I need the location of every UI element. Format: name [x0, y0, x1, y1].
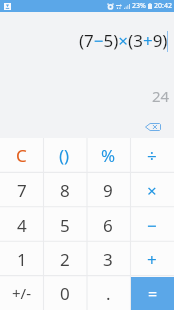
button[interactable]: − [130, 208, 174, 242]
staticText: 2 [60, 248, 70, 271]
staticText: ÷ [147, 144, 157, 167]
button[interactable]: % [86, 138, 130, 173]
button[interactable]: Backspace [140, 117, 166, 137]
button[interactable]: 5 [43, 208, 86, 242]
button[interactable]: 8 [43, 173, 86, 208]
staticText: 3 [103, 248, 113, 271]
staticText: 8 [60, 179, 70, 202]
button[interactable]: ÷ [130, 138, 174, 173]
button[interactable]: 7 [0, 173, 43, 208]
staticText: = [148, 283, 158, 305]
button[interactable]: 1 [0, 242, 43, 276]
staticText: 6 [103, 214, 113, 237]
button[interactable]: 2 [43, 242, 86, 276]
staticText: . [106, 282, 111, 305]
staticText: +/- [12, 283, 31, 303]
staticText: % [101, 144, 116, 167]
button[interactable]: 4 [0, 208, 43, 242]
button[interactable]: 9 [86, 173, 130, 208]
staticText: 5 [60, 214, 70, 237]
staticText: − [147, 214, 157, 237]
button[interactable]: C [0, 138, 43, 173]
staticText: () [59, 144, 70, 167]
staticText: 20:42 [154, 1, 172, 11]
button[interactable]: 6 [86, 208, 130, 242]
button[interactable]: +/- [0, 276, 43, 310]
staticText: 7 [17, 179, 27, 202]
button[interactable]: + [130, 242, 174, 276]
staticText: (7−5)×(3+9) [79, 29, 168, 52]
button[interactable]: = [130, 276, 174, 310]
staticText: 24 [152, 86, 170, 106]
button[interactable]: 0 [43, 276, 86, 310]
button[interactable]: () [43, 138, 86, 173]
staticText: 1 [17, 248, 27, 271]
button[interactable]: . [86, 276, 130, 310]
staticText: 9 [103, 179, 113, 202]
staticText: + [147, 248, 157, 271]
button[interactable]: × [130, 173, 174, 208]
staticText: 23% [132, 1, 146, 11]
staticText: C [16, 144, 27, 167]
staticText: × [147, 179, 157, 202]
button[interactable]: 3 [86, 242, 130, 276]
staticText: 0 [60, 282, 70, 305]
staticText: 4 [17, 214, 27, 237]
